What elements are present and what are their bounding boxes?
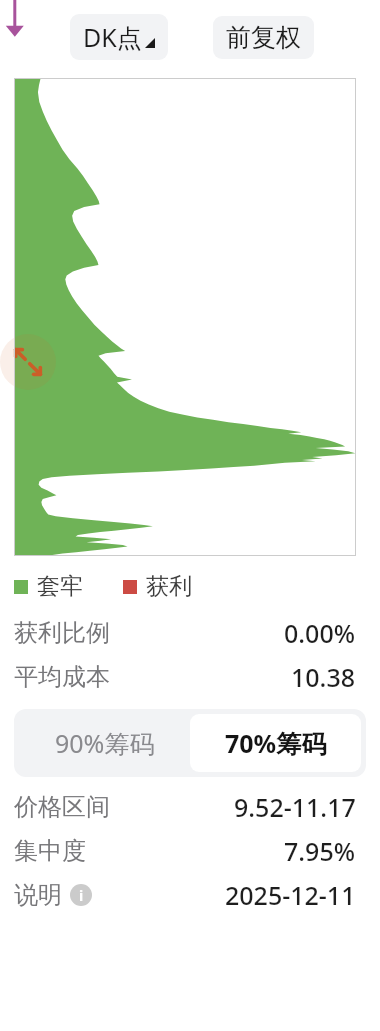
- staticText: DK点: [83, 20, 142, 54]
- staticText: 集中度: [14, 836, 86, 866]
- staticText: 价格区间: [14, 792, 110, 822]
- button[interactable]: 前复权: [213, 16, 314, 59]
- button[interactable]: 70%筹码: [190, 714, 361, 772]
- staticText: 9.52-11.17: [234, 790, 356, 824]
- staticText: 70%筹码: [225, 726, 327, 760]
- button[interactable]: 集中度: [0, 831, 380, 871]
- other: Info: [70, 884, 92, 906]
- button[interactable]: 90%筹码: [19, 714, 190, 772]
- button[interactable]: DK点: [70, 14, 168, 60]
- staticText: 说明: [14, 880, 62, 910]
- staticText: 套牢: [37, 572, 83, 601]
- staticText: 获利: [146, 572, 192, 601]
- staticText: 10.38: [291, 660, 356, 694]
- staticText: 90%筹码: [55, 726, 155, 760]
- button[interactable]: Expand chart: [0, 334, 56, 390]
- button[interactable]: 说明: [0, 875, 380, 915]
- button[interactable]: 价格区间: [0, 787, 380, 827]
- staticText: 2025-12-11: [225, 878, 356, 912]
- staticText: 前复权: [226, 22, 301, 53]
- button[interactable]: 平均成本: [0, 657, 380, 697]
- button[interactable]: 获利比例: [0, 613, 380, 653]
- staticText: 7.95%: [284, 834, 356, 868]
- staticText: 获利比例: [14, 618, 110, 648]
- staticText: i: [79, 886, 84, 905]
- staticText: 平均成本: [14, 662, 110, 692]
- staticText: 0.00%: [284, 616, 356, 650]
